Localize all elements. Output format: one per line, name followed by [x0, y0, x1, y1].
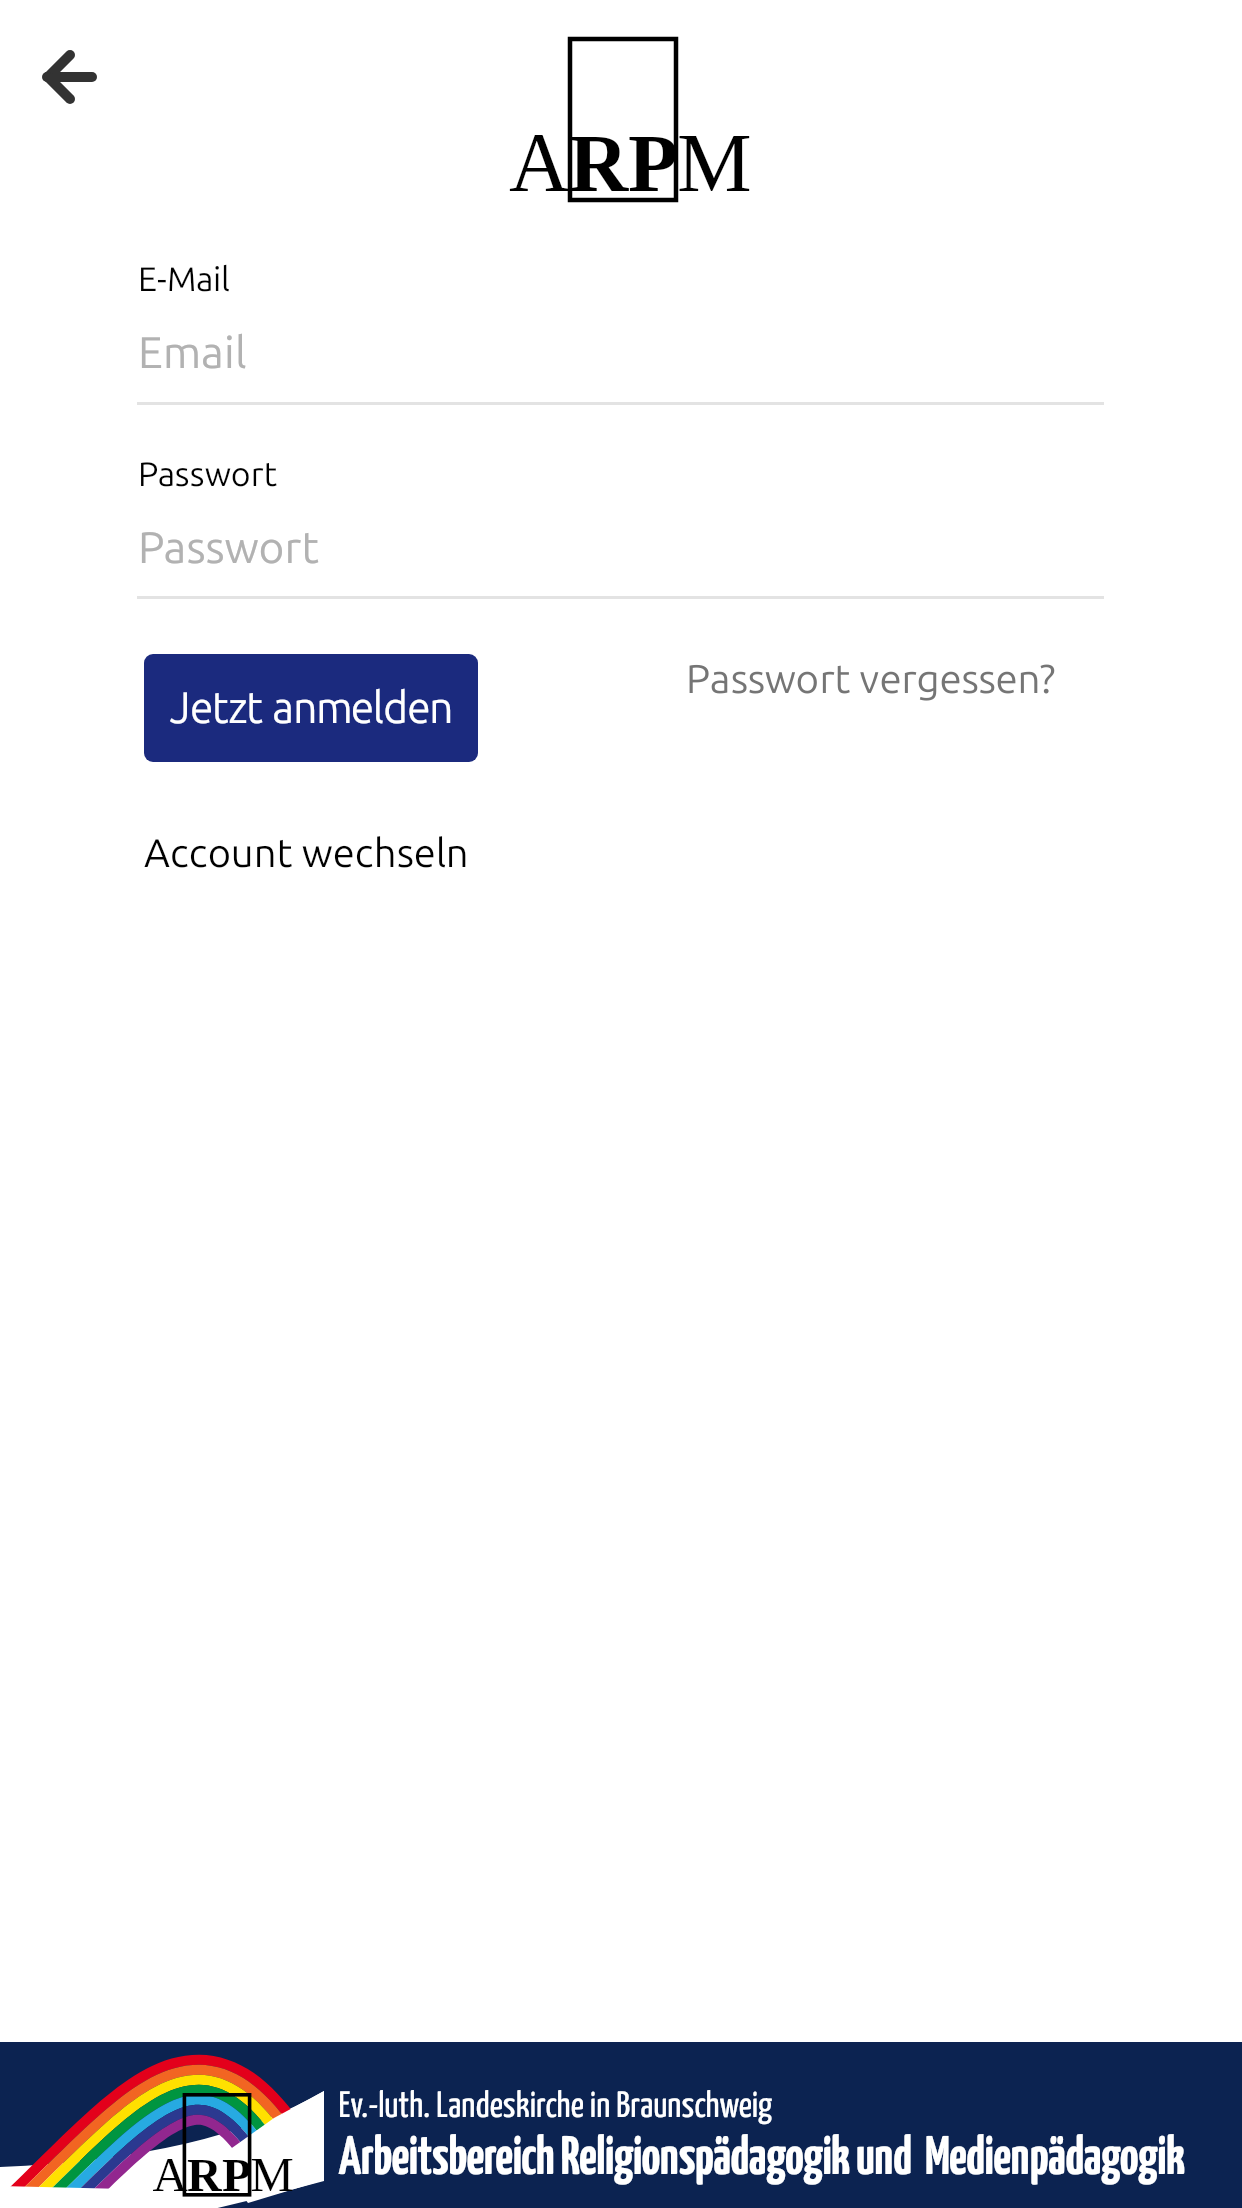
button[interactable] [140, 831, 470, 887]
button[interactable]: Back [24, 33, 112, 121]
button[interactable] [144, 654, 478, 762]
button[interactable] [686, 656, 1060, 714]
